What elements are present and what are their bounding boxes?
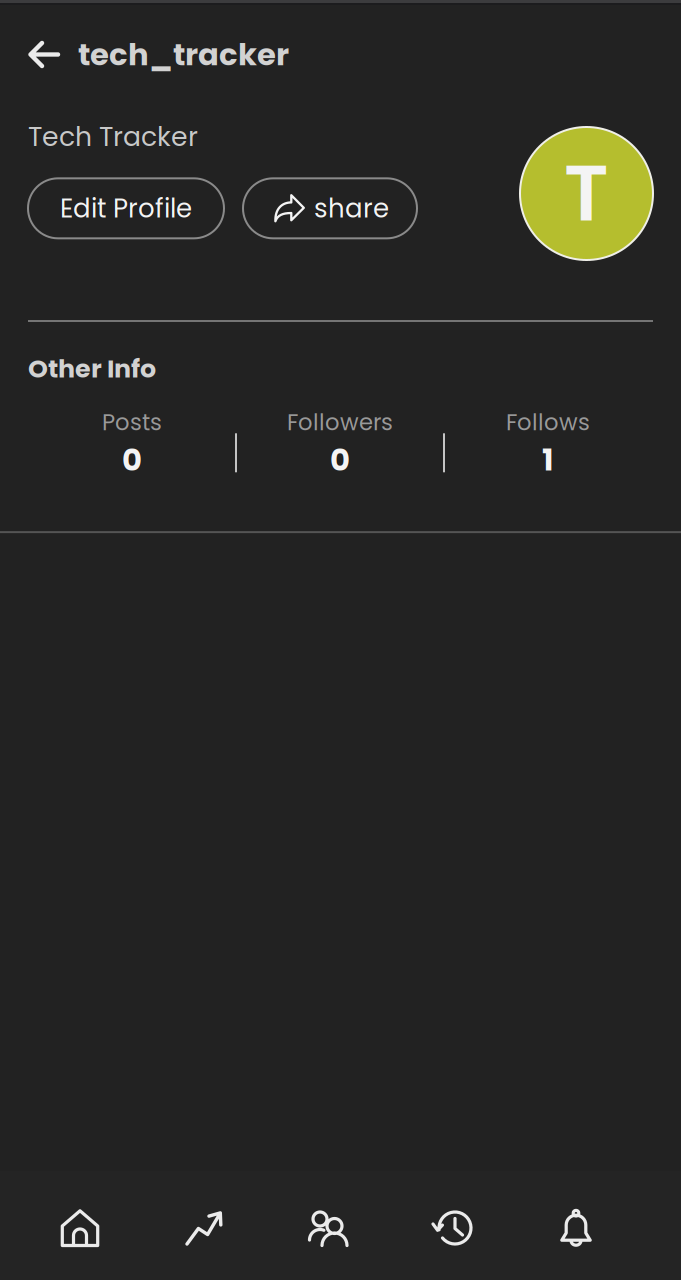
- staticText: tech_tracker: [78, 33, 289, 76]
- button[interactable]: Trending: [142, 1171, 266, 1280]
- staticText: 1: [542, 438, 554, 481]
- button[interactable]: Home: [18, 1171, 142, 1280]
- button[interactable]: share: [243, 178, 417, 238]
- staticText: Edit Profile: [60, 190, 192, 226]
- button[interactable]: Notifications: [514, 1171, 638, 1280]
- staticText: Other Info: [28, 351, 156, 386]
- staticText: share: [314, 190, 389, 226]
- button[interactable]: Back: [28, 24, 78, 84]
- button[interactable]: People: [266, 1171, 390, 1280]
- staticText: T: [564, 139, 609, 248]
- staticText: 0: [122, 438, 142, 481]
- staticText: 0: [330, 438, 350, 481]
- button[interactable]: History: [390, 1171, 514, 1280]
- staticText: Followers: [287, 406, 393, 438]
- staticText: Follows: [506, 406, 590, 438]
- staticText: Tech Tracker: [28, 118, 198, 155]
- button[interactable]: Edit Profile: [28, 178, 224, 238]
- staticText: Posts: [102, 406, 162, 438]
